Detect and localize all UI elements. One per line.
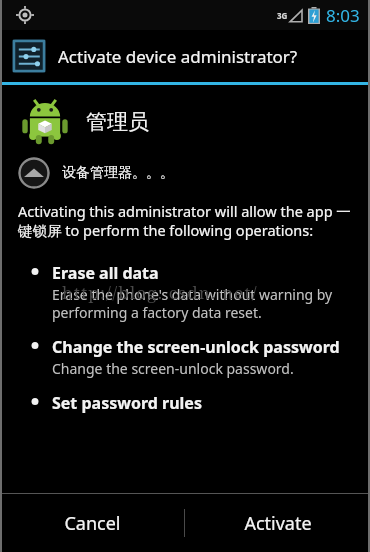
staticText: Cancel (64, 511, 121, 536)
staticText: Set password rules (52, 392, 202, 414)
other: Collapse details (18, 157, 50, 189)
staticText: 设备管理器。。。 (62, 164, 174, 182)
staticText: Erase all data (52, 262, 159, 284)
staticText: Change the screen-unlock password (52, 336, 340, 358)
button[interactable]: Cancel (0, 494, 184, 552)
staticText: Activate device administrator? (58, 45, 298, 68)
staticText: 管理员 (86, 109, 149, 135)
staticText: Erase the phone's data without warning b… (52, 285, 356, 322)
staticText: http://blog. csdn. net/ (62, 281, 258, 304)
staticText: Activate (244, 511, 312, 536)
staticText: Activating this administrator will allow… (18, 201, 356, 240)
staticText: 8:03 (326, 4, 360, 27)
button[interactable]: Collapse details (18, 155, 174, 191)
button[interactable]: Activate (185, 494, 370, 552)
staticText: 3G (277, 10, 288, 21)
staticText: Change the screen-unlock password. (52, 359, 294, 378)
